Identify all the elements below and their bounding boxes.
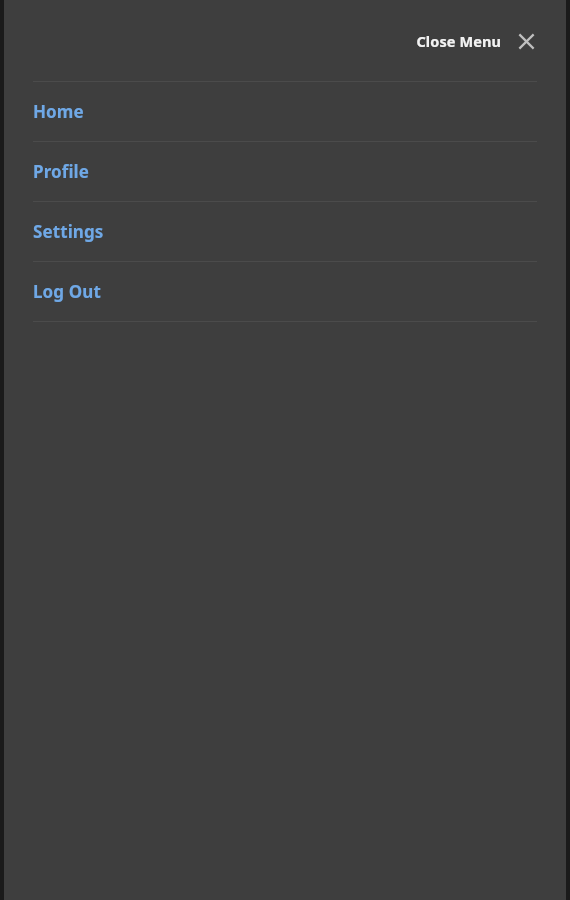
button[interactable]: Home [33,82,537,141]
button[interactable]: Log Out [33,262,537,321]
staticText: Settings [33,220,104,243]
button[interactable]: Close Menu [416,24,537,58]
button[interactable]: Settings [33,202,537,261]
other: Close Menu [515,30,537,52]
button[interactable]: Profile [33,142,537,201]
staticText: Profile [33,160,90,183]
staticText: Log Out [33,280,101,303]
staticText: Close Menu [416,31,501,51]
staticText: Home [33,100,84,123]
